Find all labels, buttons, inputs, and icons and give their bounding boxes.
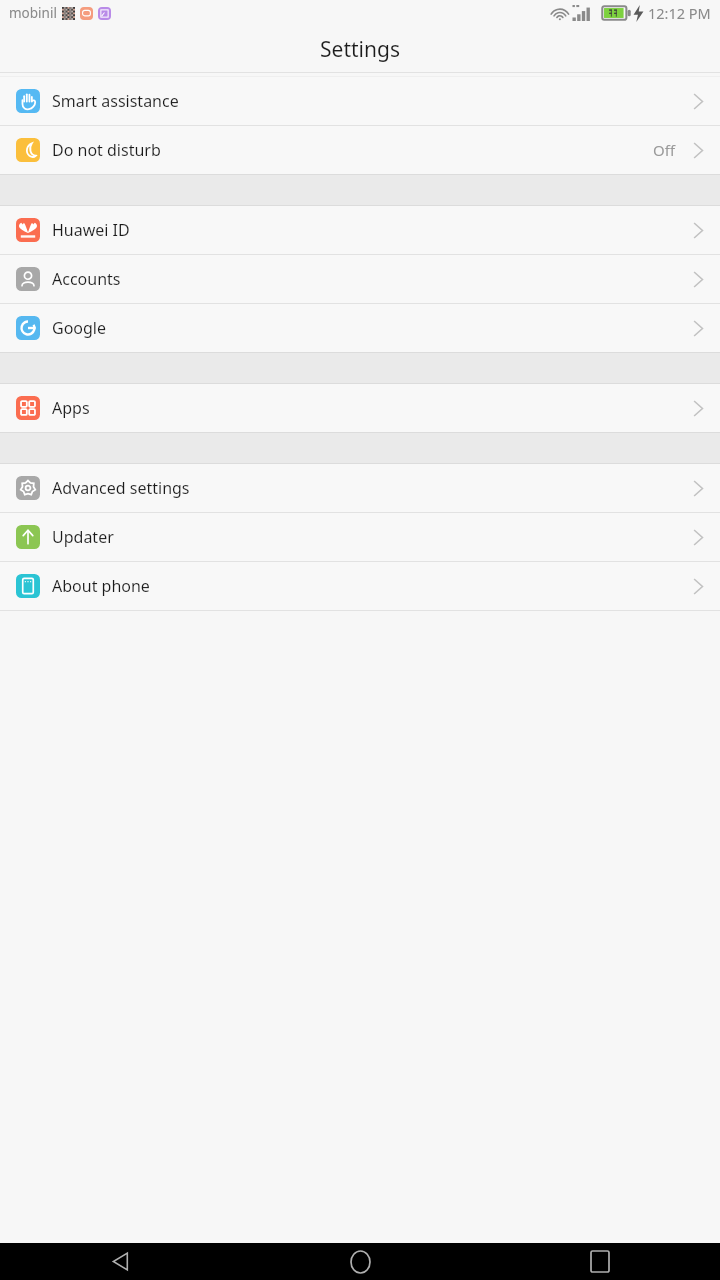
button[interactable]: About phone	[0, 562, 720, 610]
staticText: Accounts	[52, 268, 121, 290]
staticText: 12:12 PM	[648, 3, 711, 23]
staticText: Settings	[320, 35, 400, 64]
staticText: Smart assistance	[52, 90, 179, 112]
staticText: Off	[653, 140, 676, 160]
button[interactable]: Home	[240, 1243, 480, 1280]
staticText: Google	[52, 317, 107, 339]
staticText: Updater	[52, 526, 114, 548]
button[interactable]: Huawei ID	[0, 206, 720, 254]
button[interactable]: Apps	[0, 384, 720, 432]
button[interactable]: Recents	[480, 1243, 720, 1280]
staticText: mobinil	[9, 4, 57, 22]
button[interactable]: Do not disturb	[0, 126, 720, 174]
staticText: Do not disturb	[52, 139, 161, 161]
button[interactable]: Smart assistance	[0, 77, 720, 125]
staticText: About phone	[52, 575, 150, 597]
button[interactable]: Accounts	[0, 255, 720, 303]
button[interactable]: Google	[0, 304, 720, 352]
button[interactable]: Updater	[0, 513, 720, 561]
staticText: Advanced settings	[52, 477, 190, 499]
button[interactable]: Back	[0, 1243, 240, 1280]
staticText: Huawei ID	[52, 219, 130, 241]
button[interactable]: Advanced settings	[0, 464, 720, 512]
staticText: Apps	[52, 397, 90, 419]
